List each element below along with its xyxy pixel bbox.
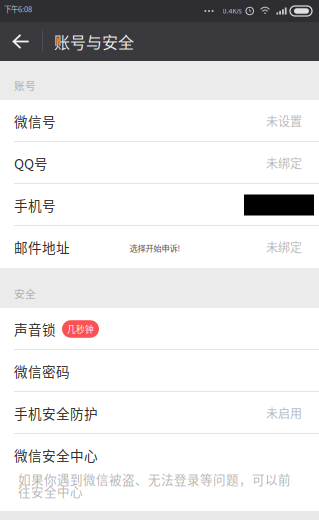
staticText: QQ号 xyxy=(14,153,48,173)
staticText: 手机号 xyxy=(14,195,56,215)
button[interactable]: 手机号 xyxy=(0,184,319,226)
staticText: 微信密码 xyxy=(14,361,70,381)
staticText: 下午6:08 xyxy=(4,4,32,14)
button[interactable]: 微信安全中心 xyxy=(0,434,319,476)
staticText: 账号与安全 xyxy=(54,30,134,53)
staticText: 如果你遇到微信被盗、无法登录等问题，可以前 xyxy=(18,470,291,488)
button[interactable]: 微信号 xyxy=(0,100,319,142)
button[interactable]: QQ号 xyxy=(0,142,319,184)
staticText: 邮件地址 xyxy=(14,237,70,257)
staticText: 未启用 xyxy=(266,404,302,422)
staticText: 微信号 xyxy=(14,111,56,131)
staticText: 声音锁 xyxy=(14,319,56,339)
button[interactable]: 手机安全防护 xyxy=(0,392,319,434)
staticText: 账号 xyxy=(14,78,36,93)
staticText: 未绑定 xyxy=(266,238,302,256)
staticText: 未绑定 xyxy=(266,154,302,172)
staticText: 0.4K/s xyxy=(222,7,241,15)
button[interactable]: 微信密码 xyxy=(0,350,319,392)
staticText: 未设置 xyxy=(266,112,302,130)
button[interactable]: 邮件地址 xyxy=(0,226,319,268)
staticText: 安全 xyxy=(14,286,36,301)
staticText: 往安全中心 xyxy=(18,482,83,500)
staticText: 微信安全中心 xyxy=(14,445,98,465)
button[interactable]: 返回 xyxy=(0,22,42,61)
staticText: 手机安全防护 xyxy=(14,403,98,423)
button[interactable]: 声音锁 xyxy=(0,308,319,350)
staticText: 选择开始申诉! xyxy=(129,242,180,254)
staticText: 几秒钟 xyxy=(67,323,94,335)
